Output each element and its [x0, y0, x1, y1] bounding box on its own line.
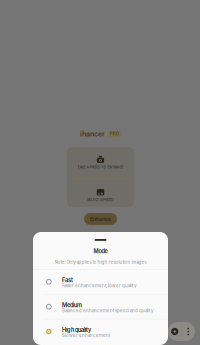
staticText: Faster enhancement, lower quality — [62, 283, 136, 288]
staticText: Mode — [93, 248, 107, 254]
button[interactable]: Medium — [33, 294, 168, 319]
staticText: Enhance — [90, 216, 111, 222]
button[interactable]: Fast — [33, 269, 168, 294]
button[interactable]: Enhance — [84, 213, 117, 225]
staticText: ihancer — [80, 130, 105, 138]
staticText: Balanced enhancement speed and quality — [62, 308, 153, 313]
button[interactable]: Settings — [168, 322, 181, 341]
staticText: Note: Only applies to high resolution im… — [54, 259, 146, 265]
staticText: Fast — [62, 277, 73, 284]
button[interactable]: More options — [182, 322, 195, 341]
staticText: SELECT A PHOTO — [87, 198, 114, 202]
staticText: TAKE A PHOTO TO ENHANCE — [77, 165, 123, 169]
button[interactable]: SELECT A PHOTO — [67, 180, 134, 210]
button[interactable]: TAKE A PHOTO TO ENHANCE — [67, 147, 134, 177]
staticText: High quality — [62, 327, 91, 333]
staticText: Slower enhancement — [62, 333, 110, 338]
staticText: PRO — [110, 131, 119, 136]
button[interactable]: High quality — [33, 319, 168, 344]
staticText: Medium — [62, 302, 82, 308]
